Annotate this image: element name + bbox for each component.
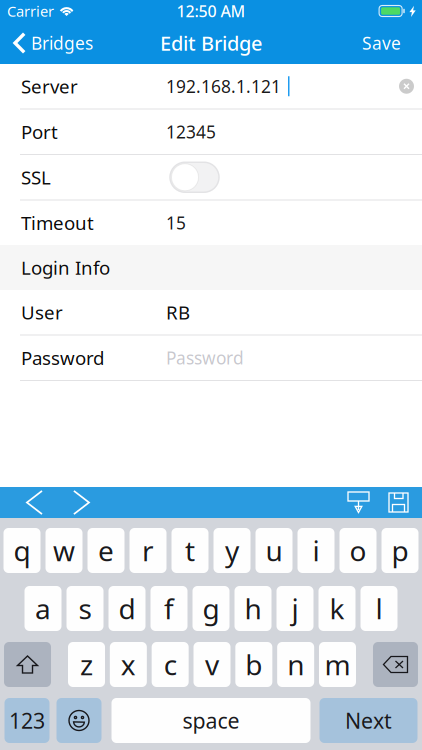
staticText: q — [13, 532, 30, 569]
button[interactable]: l — [360, 586, 397, 631]
staticText: u — [265, 532, 282, 569]
staticText: Edit Bridge — [160, 30, 262, 56]
staticText: Port — [21, 119, 58, 144]
staticText: y — [225, 532, 239, 569]
staticText: z — [80, 646, 93, 683]
staticText: 123 — [9, 706, 45, 735]
staticText: SSL — [21, 165, 51, 190]
staticText: j — [291, 590, 298, 627]
staticText: space — [182, 706, 239, 735]
button[interactable]: p — [381, 528, 418, 573]
staticText: s — [78, 590, 91, 627]
button[interactable]: Save — [380, 487, 422, 518]
staticText: 192.168.1.121 — [166, 75, 281, 98]
staticText: d — [118, 590, 135, 627]
staticText: k — [329, 590, 344, 627]
staticText: Password — [21, 345, 104, 370]
staticText: v — [205, 646, 219, 683]
button[interactable]: Next — [319, 698, 417, 743]
staticText: w — [53, 532, 75, 569]
button[interactable]: h — [234, 586, 271, 631]
staticText: RB — [166, 300, 190, 325]
staticText: n — [287, 646, 304, 683]
button[interactable]: x — [110, 642, 147, 687]
button[interactable]: s — [66, 586, 103, 631]
button[interactable]: u — [255, 528, 292, 573]
button[interactable]: k — [318, 586, 355, 631]
staticText: f — [164, 590, 174, 627]
staticText: r — [142, 532, 154, 569]
button[interactable]: Next field — [58, 487, 105, 518]
staticText: 12345 — [166, 120, 216, 143]
button[interactable]: Save — [348, 22, 422, 64]
button[interactable]: j — [276, 586, 313, 631]
button[interactable]: m — [319, 642, 356, 687]
button[interactable]: 123 — [4, 698, 49, 743]
button[interactable]: a — [24, 586, 61, 631]
staticText: Save — [362, 31, 401, 54]
button[interactable]: d — [108, 586, 145, 631]
staticText: p — [391, 532, 408, 569]
staticText: Timeout — [21, 210, 94, 235]
button[interactable]: Bridges — [0, 22, 103, 64]
button[interactable]: z — [68, 642, 105, 687]
staticText: a — [35, 590, 51, 627]
button[interactable]: space — [111, 698, 310, 743]
staticText: Carrier — [7, 1, 54, 21]
staticText: i — [312, 532, 319, 569]
staticText: o — [349, 532, 366, 569]
staticText: Login Info — [21, 255, 110, 280]
button[interactable]: SSL, off — [170, 162, 219, 192]
button[interactable]: c — [152, 642, 189, 687]
button[interactable]: Clear text — [391, 71, 422, 102]
button[interactable]: g — [192, 586, 229, 631]
button[interactable]: b — [235, 642, 272, 687]
staticText: 12:50 AM — [176, 0, 245, 22]
staticText: Next — [345, 706, 392, 735]
staticText: 15 — [166, 211, 186, 234]
staticText: User — [21, 300, 63, 325]
button[interactable]: y — [213, 528, 250, 573]
button[interactable]: e — [87, 528, 124, 573]
button[interactable]: Hide keyboard — [339, 487, 380, 518]
staticText: c — [164, 646, 177, 683]
staticText: e — [98, 532, 114, 569]
button[interactable]: r — [129, 528, 166, 573]
staticText: b — [245, 646, 262, 683]
button[interactable]: n — [277, 642, 314, 687]
staticText: Password — [166, 346, 244, 369]
button[interactable]: q — [3, 528, 40, 573]
button[interactable]: Shift — [4, 642, 51, 687]
staticText: l — [375, 590, 382, 627]
staticText: h — [244, 590, 261, 627]
button[interactable]: Previous field — [0, 487, 58, 518]
staticText: Bridges — [31, 31, 93, 54]
button[interactable]: w — [45, 528, 82, 573]
button[interactable]: i — [297, 528, 334, 573]
button[interactable]: t — [171, 528, 208, 573]
staticText: x — [121, 646, 136, 683]
staticText: m — [324, 646, 350, 683]
button[interactable]: Emoji — [56, 698, 101, 743]
staticText: Server — [21, 74, 78, 99]
button[interactable]: f — [150, 586, 187, 631]
button[interactable]: v — [193, 642, 230, 687]
staticText: t — [185, 532, 195, 569]
staticText: g — [202, 590, 219, 627]
button[interactable]: o — [339, 528, 376, 573]
button[interactable]: Delete — [373, 642, 418, 687]
